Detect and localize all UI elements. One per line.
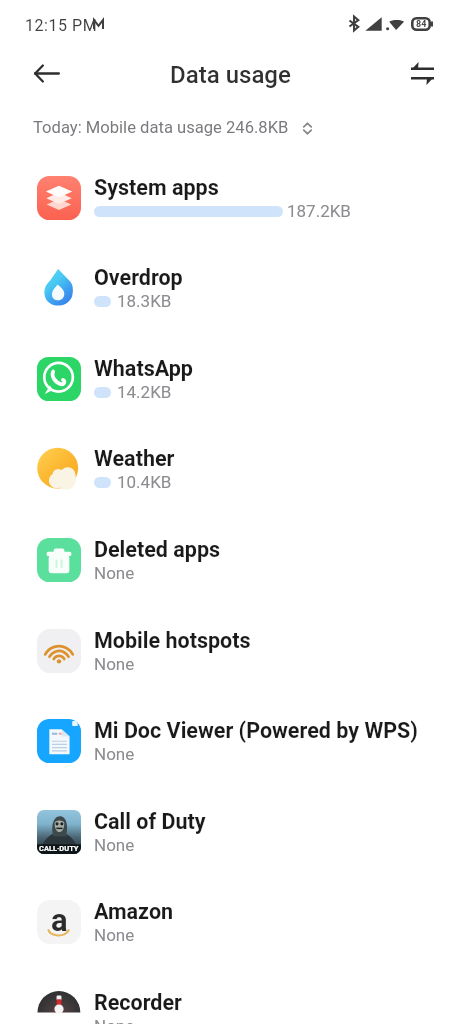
staticText: Deleted apps [94, 537, 221, 562]
button[interactable]: Mi Doc Viewer (Powered by WPS) [0, 696, 461, 786]
staticText: None [94, 835, 135, 855]
button[interactable]: Today: Mobile data usage 246.8KB [0, 110, 461, 144]
button[interactable]: System apps [0, 153, 461, 243]
staticText: Amazon [94, 899, 174, 924]
button[interactable]: a [0, 877, 461, 967]
button[interactable]: Recorder [0, 968, 461, 1024]
staticText: None [94, 1016, 135, 1024]
staticText: a [51, 902, 68, 938]
button[interactable]: Compare data usage [403, 54, 441, 92]
staticText: 18.3KB [117, 291, 172, 311]
staticText: None [94, 925, 135, 945]
button[interactable]: Mobile hotspots [0, 606, 461, 696]
button[interactable]: Weather [0, 424, 461, 514]
staticText: Weather [94, 446, 175, 471]
staticText: Mi Doc Viewer (Powered by WPS) [94, 718, 418, 743]
staticText: Today: Mobile data usage 246.8KB [33, 118, 289, 137]
staticText: 10.4KB [117, 472, 172, 492]
staticText: 187.2KB [287, 201, 351, 221]
button[interactable]: Deleted apps [0, 515, 461, 605]
button[interactable]: Overdrop [0, 243, 461, 333]
button[interactable]: CALL·DUTY [0, 787, 461, 877]
button[interactable]: WhatsApp [0, 334, 461, 424]
staticText: Data usage [170, 61, 291, 89]
staticText: WhatsApp [94, 356, 193, 381]
staticText: 84 [416, 19, 427, 30]
staticText: 12:15 PM [25, 16, 98, 35]
staticText: None [94, 744, 135, 764]
staticText: CALL·DUTY [39, 844, 79, 853]
staticText: Overdrop [94, 265, 183, 290]
staticText: System apps [94, 175, 219, 200]
staticText: None [94, 563, 135, 583]
staticText: Mobile hotspots [94, 628, 251, 653]
staticText: 14.2KB [117, 382, 172, 402]
staticText: None [94, 654, 135, 674]
staticText: Recorder [94, 990, 182, 1015]
button[interactable]: Back [28, 54, 66, 92]
staticText: Call of Duty [94, 809, 206, 834]
